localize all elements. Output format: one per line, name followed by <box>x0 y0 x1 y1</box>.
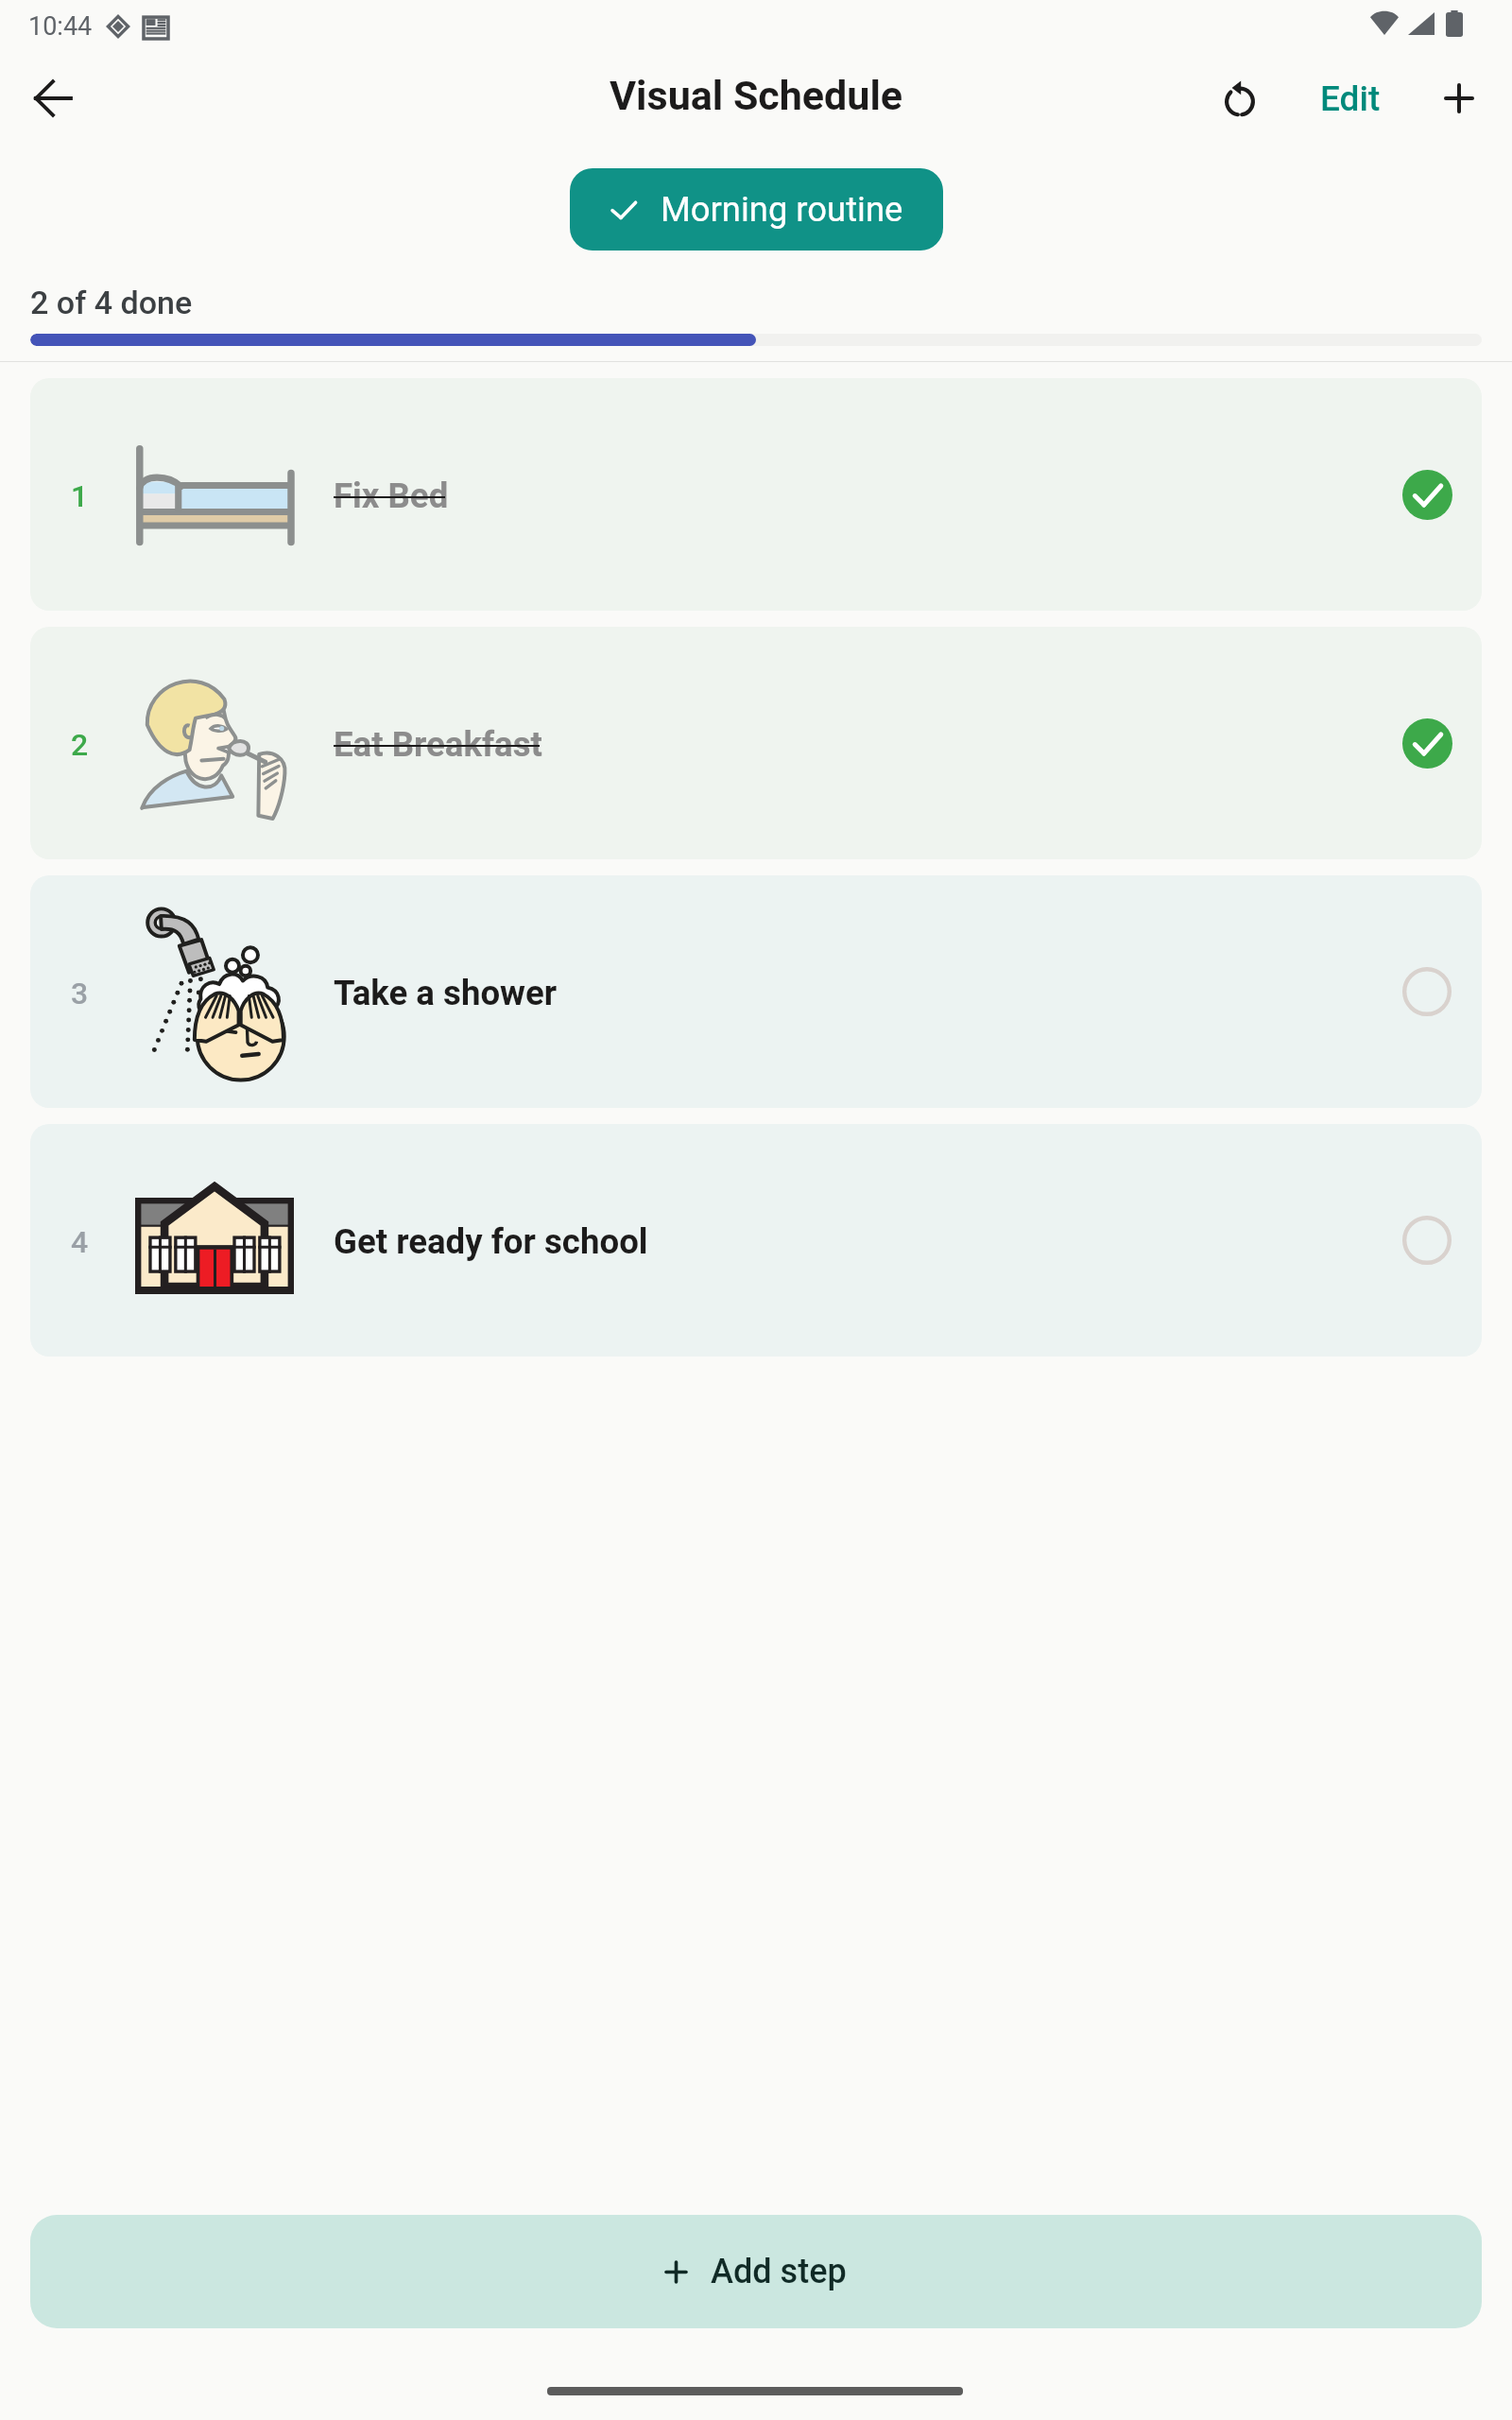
staticText: Take a shower <box>334 973 558 1013</box>
staticText: 2 <box>71 727 89 763</box>
staticText: Morning routine <box>661 189 903 230</box>
staticText: 2 of 4 done <box>30 284 193 321</box>
staticText: 10:44 <box>28 11 93 42</box>
button[interactable]: Morning routine <box>570 168 943 251</box>
staticText: Get ready for school <box>334 1221 648 1262</box>
button[interactable]: Mark done <box>1376 1189 1478 1291</box>
button[interactable]: 4 <box>30 1124 1482 1357</box>
button[interactable]: Add step <box>30 2215 1482 2328</box>
staticText: Edit <box>1320 78 1381 119</box>
staticText: Visual Schedule <box>610 72 903 119</box>
button[interactable]: Back <box>11 57 94 140</box>
staticText: Fix Bed <box>334 475 449 516</box>
staticText: Add step <box>711 2252 847 2291</box>
button[interactable]: 2 <box>30 627 1482 859</box>
button[interactable]: Reset <box>1198 56 1281 139</box>
button[interactable]: 1 <box>30 378 1482 611</box>
button[interactable]: 3 <box>30 875 1482 1108</box>
button[interactable]: Add <box>1417 57 1501 140</box>
button[interactable]: Mark not done <box>1376 692 1478 794</box>
staticText: Eat Breakfast <box>334 724 542 765</box>
button[interactable]: Mark done <box>1376 941 1478 1043</box>
button[interactable]: Edit <box>1308 57 1393 140</box>
staticText: 1 <box>71 478 89 514</box>
button[interactable]: Mark not done <box>1376 443 1478 545</box>
staticText: 4 <box>71 1224 89 1260</box>
staticText: 3 <box>71 976 89 1011</box>
